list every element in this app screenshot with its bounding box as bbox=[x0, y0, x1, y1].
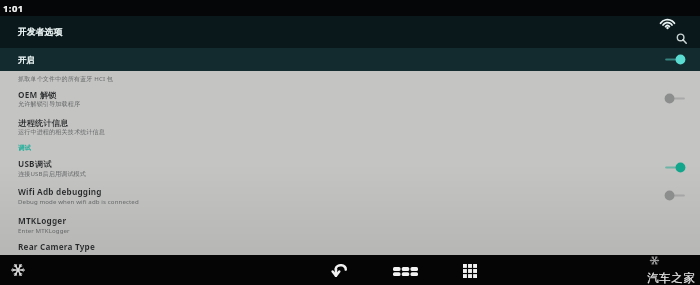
staticText: 允许解锁引导加载程序 bbox=[18, 100, 81, 108]
staticText: 连接USB后启用调试模式 bbox=[18, 169, 87, 177]
staticText: 运行中进程的相关技术统计信息 bbox=[18, 128, 105, 136]
button[interactable]: Recent apps bbox=[453, 256, 487, 285]
button[interactable]: Air conditioning bbox=[7, 259, 29, 281]
button[interactable]: Search bbox=[672, 29, 690, 47]
button[interactable]: Rear Camera Type bbox=[0, 238, 700, 255]
button[interactable]: Toggle off bbox=[662, 90, 688, 107]
staticText: 抓取单个文件中的所有蓝牙 HCI 包 bbox=[18, 74, 113, 82]
staticText: 调试 bbox=[18, 144, 32, 152]
staticText: MTKLogger bbox=[18, 215, 67, 226]
staticText: USB调试 bbox=[18, 158, 52, 169]
staticText: 开启 bbox=[18, 55, 35, 65]
button[interactable]: 进程统计信息 bbox=[0, 113, 700, 140]
staticText: Debug mode when wifi adb is connected bbox=[18, 197, 139, 205]
button[interactable]: 开启 bbox=[0, 48, 700, 71]
button[interactable]: MTKLogger bbox=[0, 210, 700, 238]
staticText: 进程统计信息 bbox=[18, 118, 69, 128]
button[interactable]: Toggle on bbox=[662, 51, 688, 68]
staticText: OEM 解锁 bbox=[18, 89, 57, 100]
staticText: Enter MTKLogger bbox=[18, 226, 70, 234]
staticText: Rear Camera Type bbox=[18, 241, 96, 252]
button[interactable]: Back bbox=[323, 256, 357, 285]
staticText: 1:01 bbox=[3, 2, 24, 15]
staticText: 开发者选项 bbox=[18, 27, 63, 38]
button[interactable]: Toggle off bbox=[662, 187, 688, 204]
staticText: 汽车之家 bbox=[647, 271, 695, 285]
staticText: Wifi Adb debugging bbox=[18, 186, 102, 197]
other: Wi-Fi connected bbox=[660, 16, 675, 31]
button[interactable]: OEM 解锁 bbox=[0, 84, 700, 113]
button[interactable]: USB调试 bbox=[0, 155, 700, 180]
button[interactable]: Wifi Adb debugging bbox=[0, 180, 700, 210]
button[interactable]: Home bbox=[388, 256, 422, 285]
button[interactable]: Toggle on bbox=[662, 159, 688, 176]
